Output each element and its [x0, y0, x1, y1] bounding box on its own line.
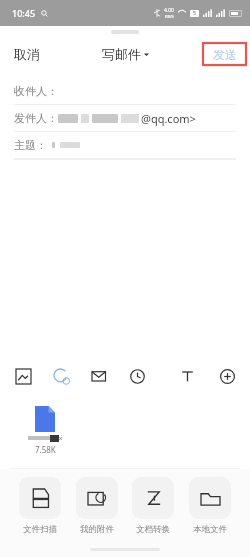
button[interactable]: 文档转换	[127, 477, 179, 533]
button[interactable]: 本地文件	[184, 477, 236, 533]
staticText: 文档转换	[136, 524, 170, 533]
staticText: 7.58K	[35, 444, 56, 455]
staticText: @qq.com>	[141, 111, 196, 126]
staticText: 写邮件	[102, 46, 141, 62]
staticText: 5	[193, 10, 196, 17]
button[interactable]: 取消	[0, 40, 54, 68]
button[interactable]: 写邮件	[96, 40, 155, 68]
staticText: KB/S	[165, 14, 174, 19]
button[interactable]: 我的附件	[71, 477, 123, 533]
button[interactable]: Add	[214, 363, 240, 389]
button[interactable]: 发件人：	[0, 105, 250, 131]
button[interactable]: 文件扫描	[14, 477, 66, 533]
button[interactable]: Mail	[86, 363, 112, 389]
staticText: 10:45	[12, 7, 36, 19]
staticText: 我的附件	[80, 524, 114, 533]
staticText: 发送	[213, 47, 237, 62]
button[interactable]: Attachments	[48, 363, 74, 389]
button[interactable]: 主题：	[0, 132, 250, 158]
staticText: 主题：	[14, 138, 47, 152]
staticText: 本地文件	[193, 524, 227, 533]
staticText: 收件人：	[14, 84, 58, 98]
button[interactable]: Text format	[174, 363, 200, 389]
button[interactable]: x	[22, 406, 68, 455]
staticText: 取消	[14, 46, 40, 62]
staticText: 发件人：	[14, 111, 58, 125]
staticText: 文件扫描	[23, 524, 57, 533]
staticText: 4.00	[164, 7, 174, 14]
staticText: x	[59, 434, 63, 442]
button[interactable]: Insert image	[10, 363, 36, 389]
button[interactable]: 收件人：	[0, 78, 250, 104]
button[interactable]: 发送	[201, 41, 248, 67]
button[interactable]: Schedule	[124, 363, 150, 389]
